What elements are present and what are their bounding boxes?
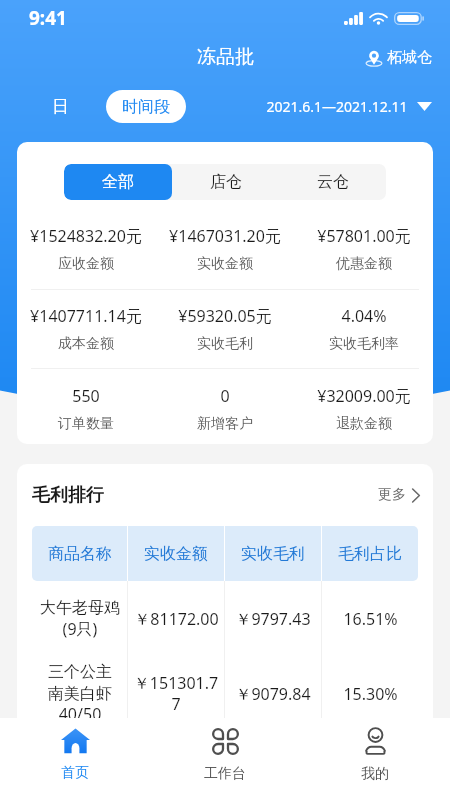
- staticText: 16.51%: [343, 608, 398, 630]
- button[interactable]: 首页: [0, 718, 150, 800]
- staticText: 柘城仓: [387, 48, 432, 67]
- staticText: 冻品批: [197, 45, 254, 69]
- staticText: ¥1407711.14元: [30, 305, 142, 327]
- button[interactable]: ¥32009.00元: [294, 385, 433, 433]
- staticText: 15.30%: [343, 683, 398, 705]
- staticText: 成本金额: [58, 335, 114, 353]
- staticText: ¥1524832.20元: [30, 225, 142, 247]
- button[interactable]: 2021.6.1—2021.12.11: [266, 97, 450, 116]
- staticText: 550: [72, 385, 100, 407]
- button[interactable]: 4.04%: [294, 305, 433, 353]
- staticText: 实收金额: [144, 544, 208, 564]
- staticText: 店仓: [210, 172, 242, 192]
- staticText: 云仓: [317, 172, 349, 192]
- staticText: 工作台: [204, 765, 246, 783]
- staticText: 退款金额: [336, 415, 392, 433]
- staticText: 时间段: [122, 97, 170, 117]
- staticText: 毛利排行: [32, 484, 104, 507]
- button[interactable]: ¥59320.05元: [155, 305, 294, 353]
- button[interactable]: 店仓: [172, 164, 279, 200]
- staticText: 9:41: [29, 5, 67, 31]
- button[interactable]: 大午老母鸡 (9只): [32, 581, 418, 656]
- staticText: ￥9079.84: [235, 683, 311, 705]
- staticText: 大午老母鸡 (9只): [40, 598, 120, 640]
- staticText: 实收毛利率: [329, 335, 399, 353]
- button[interactable]: ¥1524832.20元: [17, 225, 155, 273]
- button[interactable]: 0: [155, 385, 294, 433]
- button[interactable]: 日: [44, 90, 77, 123]
- staticText: ¥1467031.20元: [169, 225, 281, 247]
- staticText: 2021.6.1—2021.12.11: [266, 97, 408, 116]
- button[interactable]: 我的: [300, 718, 450, 800]
- staticText: ￥151301.77: [133, 672, 219, 715]
- staticText: ¥57801.00元: [317, 225, 411, 247]
- staticText: 首页: [61, 764, 89, 782]
- staticText: ¥59320.05元: [178, 305, 272, 327]
- button[interactable]: 更多: [378, 486, 420, 504]
- button[interactable]: 550: [17, 385, 155, 433]
- staticText: 毛利占比: [338, 544, 402, 564]
- staticText: ￥9797.43: [235, 608, 311, 630]
- staticText: ¥32009.00元: [317, 385, 411, 407]
- button[interactable]: ¥1467031.20元: [155, 225, 294, 273]
- staticText: 商品名称: [48, 544, 112, 564]
- staticText: 三个公主 南美白虾 40/50: [48, 662, 112, 725]
- button[interactable]: 三个公主 南美白虾 40/50: [32, 656, 418, 731]
- staticText: 实收毛利: [197, 335, 253, 353]
- button[interactable]: ¥1407711.14元: [17, 305, 155, 353]
- staticText: 实收毛利: [241, 544, 305, 564]
- staticText: 0: [220, 385, 230, 407]
- staticText: 优惠金额: [336, 255, 392, 273]
- button[interactable]: 全部: [64, 164, 172, 200]
- staticText: 更多: [378, 486, 406, 504]
- staticText: 4.04%: [341, 305, 387, 327]
- staticText: 应收金额: [58, 255, 114, 273]
- button[interactable]: 时间段: [106, 90, 186, 123]
- staticText: 实收金额: [197, 255, 253, 273]
- button[interactable]: ¥57801.00元: [294, 225, 433, 273]
- staticText: 新增客户: [197, 415, 253, 433]
- staticText: 全部: [102, 172, 134, 192]
- staticText: 我的: [361, 765, 389, 783]
- staticText: 日: [52, 96, 69, 117]
- button[interactable]: 云仓: [279, 164, 386, 200]
- staticText: ￥81172.00: [134, 608, 219, 630]
- button[interactable]: 切换仓库 柘城仓: [357, 42, 450, 73]
- staticText: 订单数量: [58, 415, 114, 433]
- button[interactable]: 工作台: [150, 718, 300, 800]
